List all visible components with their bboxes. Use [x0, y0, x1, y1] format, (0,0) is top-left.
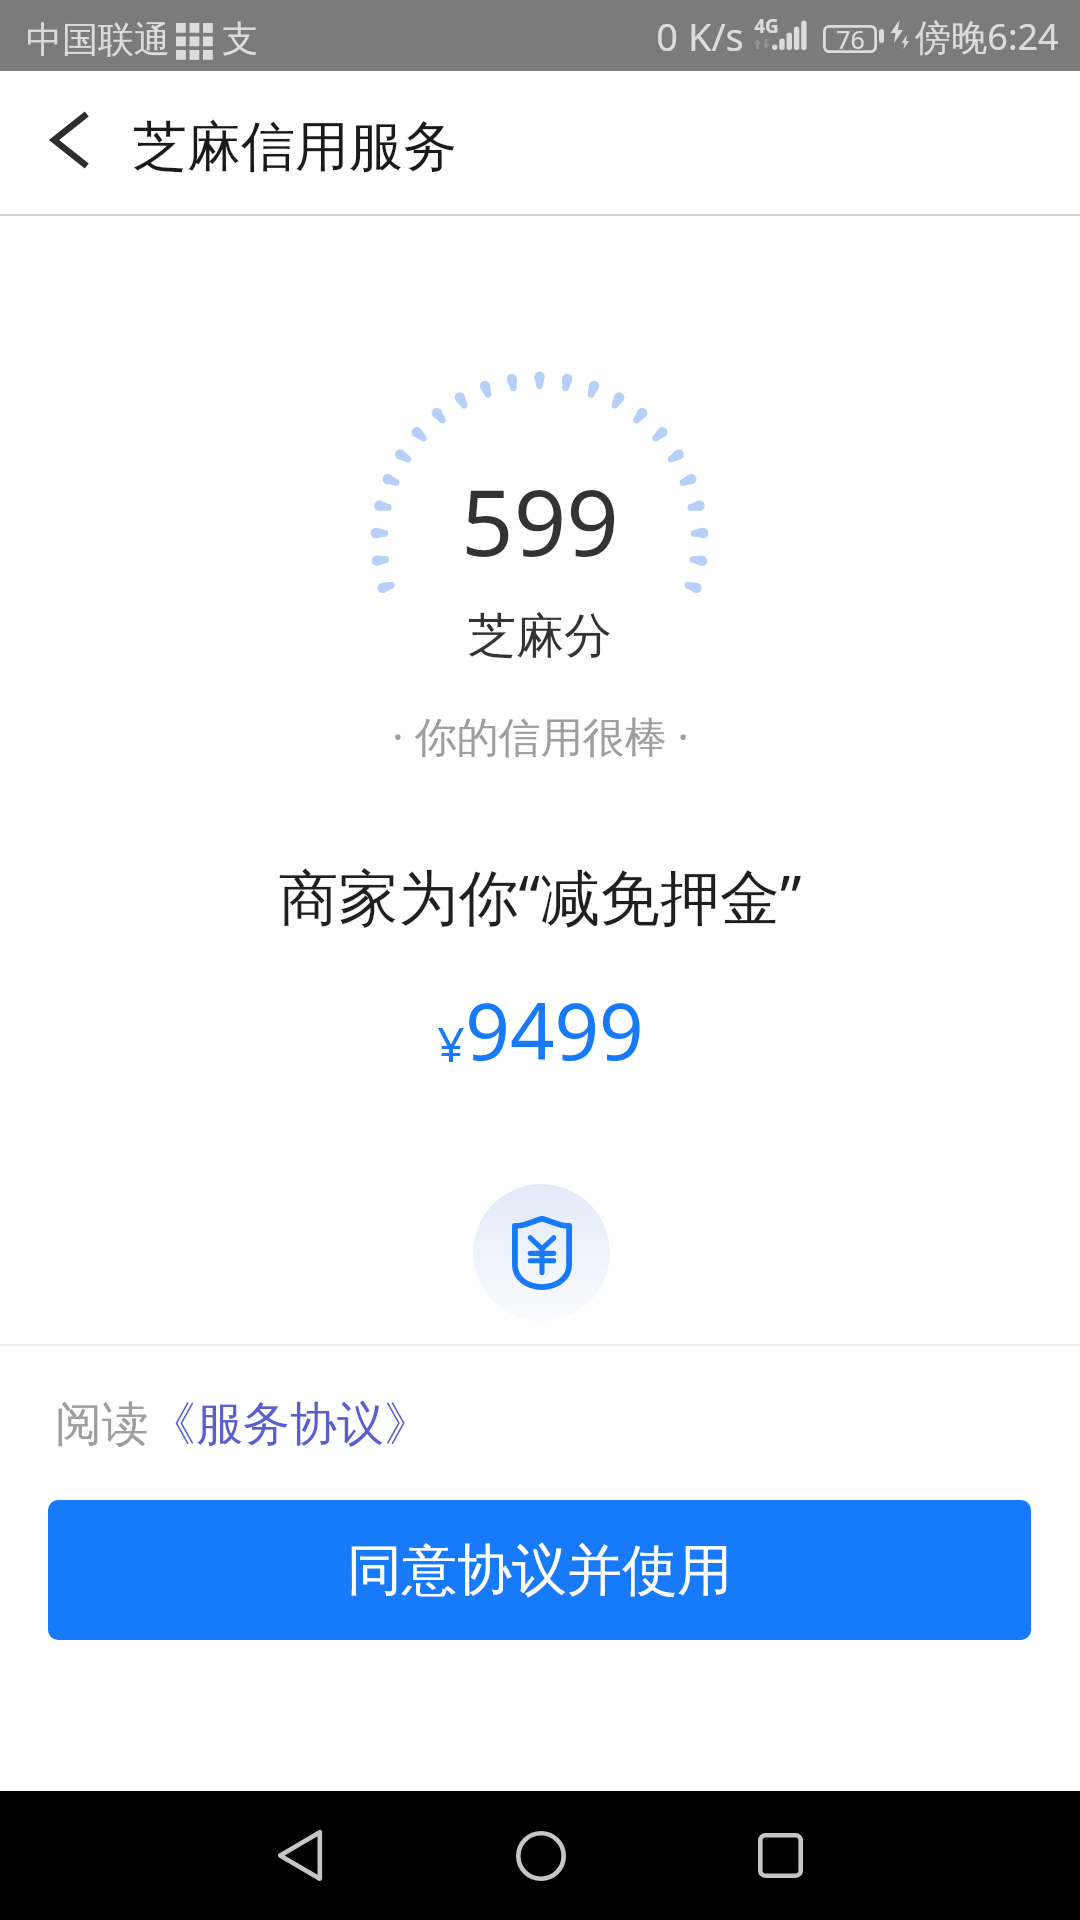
staticText: 商家为你“减免押金”	[278, 855, 802, 937]
staticText: 4G	[754, 13, 779, 39]
staticText: 支	[222, 16, 258, 61]
button[interactable]: Back	[230, 1791, 370, 1920]
staticText: 芝麻信用服务	[133, 113, 457, 181]
staticText: 《服务协议》	[149, 1395, 431, 1454]
staticText: 芝麻分	[468, 606, 612, 666]
button[interactable]: Home	[471, 1791, 611, 1920]
button[interactable]: 阅读《服务协议》	[55, 1395, 431, 1454]
staticText: 中国联通	[26, 17, 170, 62]
staticText: 0 K/s	[656, 10, 744, 62]
button[interactable]: Recents	[710, 1791, 850, 1920]
button[interactable]: 同意协议并使用	[48, 1500, 1031, 1640]
button[interactable]: 免押金保障	[473, 1184, 610, 1321]
staticText: 同意协议并使用	[347, 1536, 732, 1605]
staticText: · 你的信用很棒 ·	[392, 707, 689, 764]
staticText: 76	[836, 22, 865, 56]
staticText: 599	[461, 458, 619, 583]
staticText: ¥	[437, 1011, 465, 1076]
staticText: 傍晚6:24	[915, 12, 1059, 61]
staticText: 阅读	[55, 1395, 149, 1454]
button[interactable]: Back	[20, 90, 120, 190]
staticText: 9499	[465, 977, 644, 1083]
